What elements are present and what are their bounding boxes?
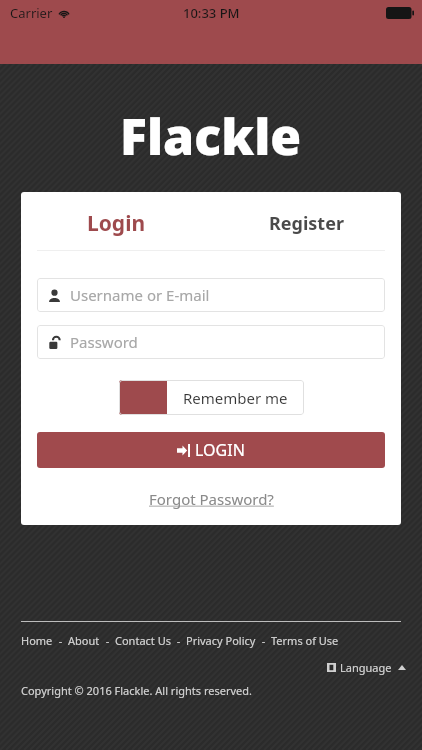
button[interactable]: LOGIN (37, 432, 385, 468)
staticText: Flackle (120, 102, 302, 170)
staticText: - (171, 633, 186, 648)
button[interactable]: Username or E-mail (37, 278, 385, 312)
button[interactable]: Home (21, 633, 53, 648)
button[interactable]: About (68, 633, 100, 648)
staticText: LOGIN (195, 439, 245, 461)
button[interactable]: Register (211, 205, 401, 241)
staticText: Home (21, 633, 53, 648)
button[interactable]: Contact Us (115, 633, 171, 648)
staticText: - (100, 633, 115, 648)
staticText: Terms of Use (271, 633, 339, 648)
staticText: Carrier (10, 4, 53, 22)
staticText: Register (269, 211, 344, 236)
staticText: Copyright © 2016 Flackle. All rights res… (21, 683, 252, 698)
staticText: Privacy Policy (186, 633, 256, 648)
staticText: 10:33 PM (183, 4, 240, 22)
staticText: About (68, 633, 100, 648)
staticText: Remember me (183, 388, 288, 408)
staticText: Password (70, 332, 138, 352)
staticText: Username or E-mail (70, 285, 210, 305)
button[interactable]: Forgot Password? (145, 485, 278, 513)
staticText: - (256, 633, 271, 648)
staticText: Forgot Password? (149, 489, 274, 509)
button[interactable]: Remember me (119, 380, 304, 415)
staticText: Language (340, 660, 392, 675)
button[interactable]: Privacy Policy (186, 633, 256, 648)
button[interactable]: Password (37, 325, 385, 359)
staticText: Login (87, 209, 146, 238)
button[interactable]: Language (325, 658, 408, 677)
staticText: Contact Us (115, 633, 171, 648)
staticText: - (53, 633, 68, 648)
button[interactable]: Login (21, 205, 211, 241)
button[interactable]: Terms of Use (271, 633, 339, 648)
